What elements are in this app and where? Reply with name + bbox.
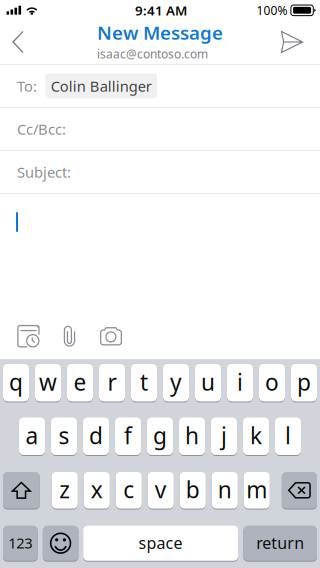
button[interactable]: r: [99, 364, 125, 401]
button[interactable]: Back: [0, 20, 40, 64]
staticText: u: [201, 367, 215, 397]
button[interactable]: g: [147, 417, 173, 455]
button[interactable]: f: [115, 417, 141, 455]
button[interactable]: k: [243, 417, 269, 455]
button[interactable]: Send: [270, 20, 320, 64]
button[interactable]: w: [35, 364, 61, 401]
staticText: 123: [8, 533, 32, 553]
button[interactable]: Take photo: [86, 322, 131, 350]
staticText: b: [186, 474, 200, 504]
staticText: f: [124, 420, 132, 450]
staticText: return: [256, 532, 304, 553]
staticText: v: [155, 474, 167, 504]
staticText: Cc/Bcc:: [17, 119, 66, 139]
button[interactable]: e: [67, 364, 93, 401]
button[interactable]: v: [148, 472, 174, 509]
staticText: t: [140, 367, 148, 397]
button[interactable]: 123: [3, 526, 38, 561]
button[interactable]: Delete: [282, 472, 317, 509]
button[interactable]: s: [51, 417, 77, 455]
staticText: g: [153, 420, 167, 450]
staticText: space: [139, 532, 183, 553]
button[interactable]: x: [84, 472, 110, 509]
staticText: n: [218, 474, 232, 504]
staticText: To:: [17, 76, 37, 96]
button[interactable]: a: [19, 417, 45, 455]
button[interactable]: m: [244, 472, 270, 509]
staticText: z: [59, 474, 70, 504]
button[interactable]: l: [275, 417, 301, 455]
staticText: d: [89, 420, 103, 450]
button[interactable]: o: [259, 364, 285, 401]
staticText: x: [91, 474, 103, 504]
staticText: 100%: [256, 2, 287, 18]
button[interactable]: u: [195, 364, 221, 401]
button[interactable]: Attach file: [53, 322, 86, 350]
button[interactable]: n: [212, 472, 238, 509]
staticText: New Message: [97, 20, 223, 45]
staticText: m: [246, 474, 267, 504]
button[interactable]: b: [180, 472, 206, 509]
staticText: isaac@contoso.com: [97, 46, 208, 62]
staticText: o: [265, 367, 279, 397]
staticText: r: [107, 367, 116, 397]
button[interactable]: Emoji: [43, 526, 78, 561]
staticText: k: [250, 420, 262, 450]
staticText: Subject:: [17, 162, 71, 182]
staticText: j: [221, 420, 227, 450]
staticText: 9:41 AM: [135, 1, 187, 19]
button[interactable]: Insert availability: [0, 322, 53, 350]
button[interactable]: z: [52, 472, 78, 509]
button[interactable]: h: [179, 417, 205, 455]
staticText: l: [285, 420, 291, 450]
button[interactable]: p: [291, 364, 317, 401]
staticText: h: [185, 420, 199, 450]
button[interactable]: y: [163, 364, 189, 401]
staticText: i: [237, 367, 243, 397]
staticText: a: [25, 420, 38, 450]
button[interactable]: d: [83, 417, 109, 455]
staticText: c: [123, 474, 134, 504]
staticText: e: [73, 367, 86, 397]
button[interactable]: j: [211, 417, 237, 455]
button[interactable]: q: [3, 364, 29, 401]
staticText: s: [58, 420, 69, 450]
button[interactable]: i: [227, 364, 253, 401]
staticText: Colin Ballinger: [51, 76, 152, 96]
staticText: y: [170, 367, 182, 397]
button[interactable]: t: [131, 364, 157, 401]
staticText: p: [297, 367, 311, 397]
staticText: q: [9, 367, 23, 397]
staticText: w: [39, 367, 57, 397]
button[interactable]: c: [116, 472, 142, 509]
button[interactable]: Shift: [3, 472, 40, 509]
button[interactable]: space: [83, 526, 238, 561]
button[interactable]: return: [243, 526, 317, 561]
